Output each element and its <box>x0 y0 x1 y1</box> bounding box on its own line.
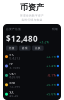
staticText: 45.20 <box>9 94 18 98</box>
staticText: 管理你的数字资产 <box>20 14 44 17</box>
staticText: +2.1% <box>46 55 55 58</box>
staticText: 0.4213 <box>9 57 20 60</box>
staticText: 12.540 <box>9 85 20 88</box>
staticText: +3.2% <box>39 40 48 44</box>
staticText: 明细 <box>52 27 58 31</box>
staticText: USDT <box>9 72 15 75</box>
staticText: $12,480 <box>6 33 38 44</box>
staticText: BTC <box>9 53 14 57</box>
staticText: 币资产 <box>20 2 44 12</box>
button[interactable]: USDT <box>3 71 61 80</box>
button[interactable]: 提现 <box>19 45 31 51</box>
button[interactable]: 兑换 <box>32 45 44 51</box>
staticText: +1.4% <box>46 64 55 68</box>
staticText: +5.6% <box>46 92 55 96</box>
staticText: 充值 <box>9 46 15 50</box>
staticText: ETH <box>9 62 13 66</box>
staticText: -0.1% <box>47 74 55 77</box>
button[interactable]: SOL <box>3 89 61 99</box>
staticText: 提现 <box>22 46 28 50</box>
staticText: SOL <box>9 91 13 94</box>
staticText: 兑换 <box>35 46 41 50</box>
button[interactable]: BTC <box>3 52 61 61</box>
staticText: 总资产估值 <box>6 27 21 31</box>
staticText: 3.1080 <box>9 66 20 69</box>
button[interactable]: ETH <box>3 61 61 71</box>
staticText: +0.9% <box>46 83 55 86</box>
staticText: BNB <box>9 81 15 85</box>
staticText: 820.00 <box>9 75 20 79</box>
staticText: 实时行情与收益 <box>21 18 42 22</box>
button[interactable]: BNB <box>3 80 61 89</box>
button[interactable]: 充值 <box>6 45 18 51</box>
